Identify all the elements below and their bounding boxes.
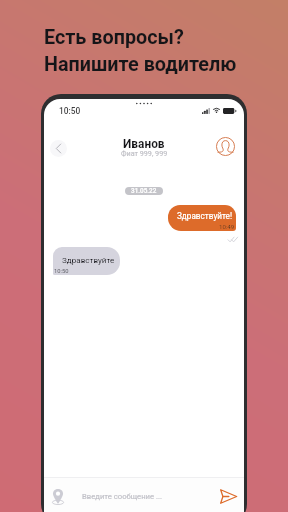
staticText: 10:49 [219, 223, 235, 230]
staticText: Иванов [123, 137, 165, 151]
staticText: 31.05.22 [131, 187, 157, 195]
staticText: 10:50 [59, 106, 81, 116]
staticText: Введите сообщение ... [82, 492, 163, 501]
staticText: Есть вопросы? [44, 26, 184, 49]
button[interactable]: Введите сообщение ... [78, 485, 203, 508]
button[interactable]: Profile [216, 137, 235, 156]
staticText: Фиат 999, 999 [121, 149, 168, 157]
button[interactable]: Back [50, 140, 67, 157]
button[interactable]: Share location [50, 487, 66, 506]
staticText: Здравствуйте! [177, 211, 233, 221]
button[interactable]: Send [218, 487, 238, 506]
staticText: 10:50 [54, 268, 69, 275]
staticText: Здравствуйте [62, 255, 115, 264]
staticText: Напишите водителю [44, 53, 237, 76]
